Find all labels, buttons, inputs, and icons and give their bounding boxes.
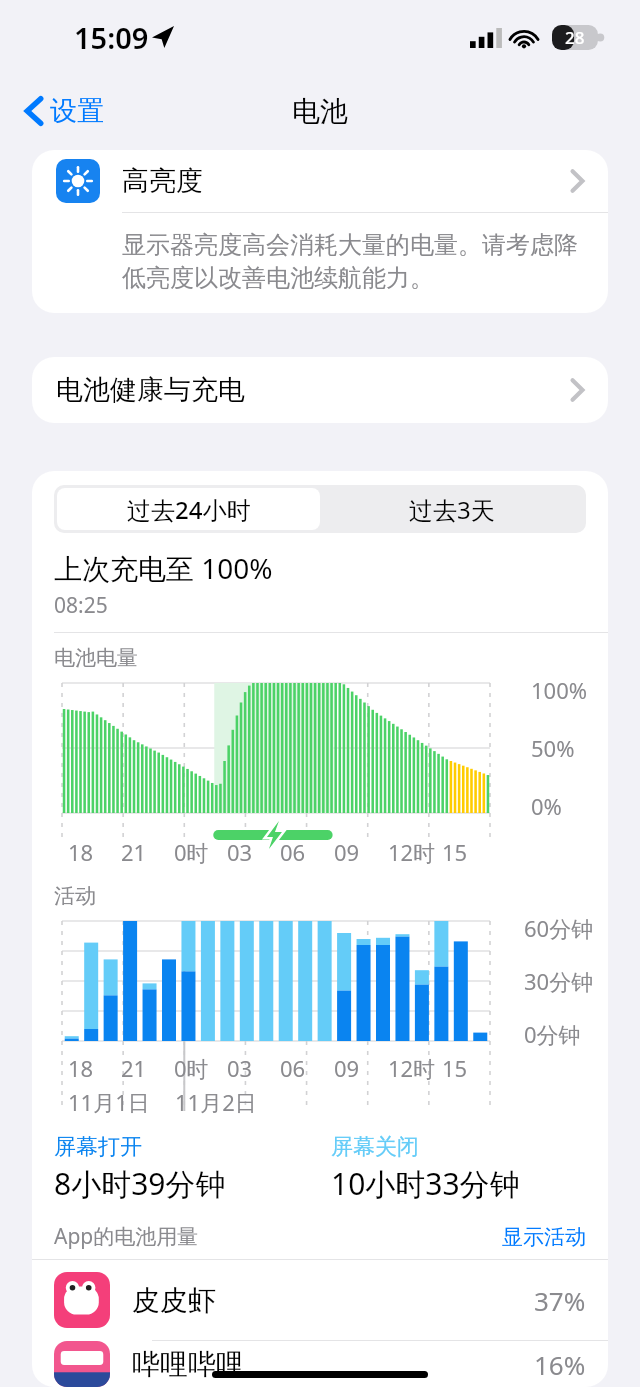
- staticText: 18: [68, 1053, 94, 1083]
- staticText: 06: [280, 837, 306, 867]
- staticText: 0%: [531, 791, 562, 821]
- staticText: 8小时39分钟: [54, 1163, 226, 1204]
- staticText: 电池健康与充电: [56, 373, 245, 407]
- staticText: 显示活动: [502, 1224, 586, 1250]
- staticText: 活动: [54, 883, 96, 909]
- staticText: 屏幕打开: [54, 1133, 142, 1161]
- staticText: 过去3天: [409, 493, 495, 526]
- button[interactable]: 哔哩哔哩: [32, 1341, 608, 1387]
- staticText: 37%: [534, 1283, 586, 1318]
- staticText: 过去24小时: [127, 493, 251, 526]
- staticText: 电池: [292, 94, 348, 129]
- staticText: 0分钟: [524, 1019, 581, 1049]
- button[interactable]: 过去24小时: [57, 488, 320, 530]
- staticText: 18: [68, 837, 94, 867]
- staticText: 21: [121, 1053, 147, 1083]
- button[interactable]: 电池健康与充电: [32, 357, 608, 423]
- staticText: 15: [442, 837, 468, 867]
- staticText: App的电池用量: [54, 1222, 199, 1251]
- staticText: 09: [334, 1053, 360, 1083]
- staticText: 显示器亮度高会消耗大量的电量。请考虑降低亮度以改善电池续航能力。: [122, 230, 582, 293]
- staticText: 06: [280, 1053, 306, 1083]
- staticText: 50%: [531, 733, 575, 763]
- staticText: 28: [565, 26, 585, 49]
- staticText: 哔哩哔哩: [132, 1347, 244, 1382]
- staticText: 30分钟: [524, 966, 594, 996]
- staticText: 设置: [50, 94, 104, 128]
- staticText: 12时: [388, 1053, 436, 1083]
- staticText: 15:09: [74, 18, 149, 57]
- staticText: 皮皮虾: [132, 1283, 216, 1318]
- staticText: 电池电量: [54, 645, 138, 671]
- button[interactable]: 高亮度: [32, 150, 608, 212]
- staticText: 60分钟: [524, 913, 594, 943]
- staticText: 16%: [534, 1347, 586, 1382]
- staticText: 屏幕关闭: [331, 1133, 419, 1161]
- staticText: 上次充电至 100%: [54, 549, 273, 587]
- staticText: 08:25: [54, 591, 108, 620]
- button[interactable]: 设置: [20, 88, 110, 134]
- staticText: 11月2日: [175, 1087, 257, 1117]
- button[interactable]: 皮皮虾: [32, 1260, 608, 1340]
- staticText: 03: [227, 837, 253, 867]
- staticText: 21: [121, 837, 147, 867]
- staticText: 10小时33分钟: [331, 1163, 520, 1204]
- staticText: 0时: [174, 1053, 209, 1083]
- other: More: [571, 379, 584, 401]
- staticText: 09: [334, 837, 360, 867]
- staticText: 高亮度: [122, 164, 203, 198]
- button[interactable]: 显示活动: [502, 1224, 586, 1250]
- other: More: [571, 170, 584, 192]
- staticText: 100%: [531, 675, 588, 705]
- staticText: 03: [227, 1053, 253, 1083]
- staticText: 12时: [388, 837, 436, 867]
- button[interactable]: 过去3天: [320, 488, 583, 530]
- staticText: 15: [442, 1053, 468, 1083]
- staticText: 11月1日: [68, 1087, 150, 1117]
- staticText: 0时: [174, 837, 209, 867]
